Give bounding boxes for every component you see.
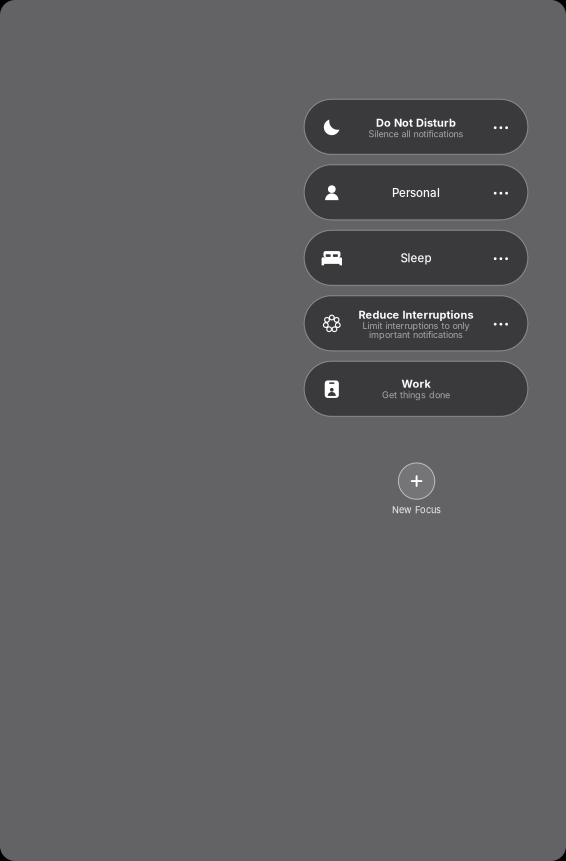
- button[interactable]: [304, 361, 528, 416]
- button[interactable]: [304, 99, 528, 154]
- button[interactable]: More options for Sleep: [486, 244, 516, 274]
- button[interactable]: More options for Do Not Disturb: [486, 113, 516, 143]
- button[interactable]: [304, 296, 528, 351]
- button[interactable]: More options for Personal: [486, 178, 516, 208]
- button[interactable]: More options for Reduce Interruptions: [486, 309, 516, 339]
- button[interactable]: [304, 230, 528, 285]
- button[interactable]: New Focus: [367, 463, 467, 519]
- button[interactable]: [304, 165, 528, 220]
